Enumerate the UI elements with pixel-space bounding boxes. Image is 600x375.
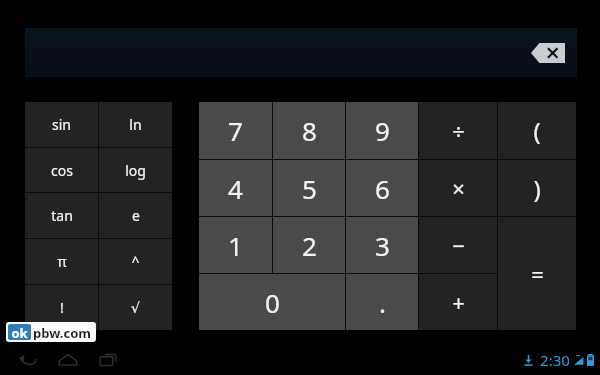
button[interactable]: Backspace	[25, 28, 577, 77]
button[interactable]: 4	[199, 160, 272, 216]
staticText: pbw.com	[33, 324, 91, 340]
staticText: 5	[302, 171, 317, 206]
staticText: !	[60, 298, 64, 317]
staticText: π	[57, 252, 67, 271]
button[interactable]: ^	[99, 239, 172, 284]
staticText: √	[131, 300, 140, 316]
button[interactable]: )	[498, 160, 576, 216]
staticText: 3	[375, 228, 390, 263]
button[interactable]: 5	[273, 160, 345, 216]
button[interactable]: ln	[99, 102, 172, 147]
staticText: 2	[302, 228, 317, 263]
button[interactable]: +	[419, 274, 497, 330]
button[interactable]: 3	[346, 217, 418, 273]
staticText: +	[452, 287, 465, 317]
staticText: 8	[302, 113, 317, 148]
button[interactable]: sin	[25, 102, 98, 147]
staticText: 1	[228, 228, 243, 263]
staticText: e	[132, 206, 140, 225]
staticText: 4	[228, 171, 243, 206]
button[interactable]: 2	[273, 217, 345, 273]
button[interactable]: 1	[199, 217, 272, 273]
staticText: ×	[452, 173, 465, 203]
button[interactable]: π	[25, 239, 98, 284]
button[interactable]: √	[99, 285, 172, 330]
staticText: ^	[131, 252, 140, 271]
staticText: (	[533, 114, 541, 147]
staticText: 6	[375, 171, 390, 206]
button[interactable]: ÷	[419, 102, 497, 159]
button[interactable]: .	[346, 274, 418, 330]
staticText: =	[531, 259, 544, 289]
button[interactable]: log	[99, 148, 172, 192]
button[interactable]: =	[498, 217, 576, 330]
button[interactable]: ×	[419, 160, 497, 216]
button[interactable]: Back	[8, 345, 48, 375]
button[interactable]: 6	[346, 160, 418, 216]
staticText: log	[125, 161, 146, 180]
button[interactable]: Recent apps	[88, 345, 128, 375]
staticText: ln	[129, 115, 142, 134]
staticText: 0	[265, 285, 280, 320]
button[interactable]: 8	[273, 102, 345, 159]
button[interactable]: tan	[25, 193, 98, 238]
button[interactable]: 0	[199, 274, 345, 330]
button[interactable]: Home	[48, 345, 88, 375]
button[interactable]: e	[99, 193, 172, 238]
staticText: )	[533, 172, 541, 205]
button[interactable]: !	[25, 285, 98, 330]
staticText: ÷	[452, 116, 465, 146]
button[interactable]: (	[498, 102, 576, 159]
staticText: .	[379, 285, 386, 320]
staticText: 7	[228, 113, 243, 148]
staticText: tan	[51, 206, 73, 225]
staticText: ok	[11, 324, 28, 340]
staticText: cos	[51, 161, 73, 180]
staticText: sin	[52, 115, 71, 134]
button[interactable]: Backspace	[531, 43, 565, 63]
staticText: −	[452, 230, 465, 260]
button[interactable]: −	[419, 217, 497, 273]
staticText: 9	[375, 113, 390, 148]
button[interactable]: 7	[199, 102, 272, 159]
staticText: 2:30	[540, 350, 570, 370]
button[interactable]: 9	[346, 102, 418, 159]
button[interactable]: cos	[25, 148, 98, 192]
